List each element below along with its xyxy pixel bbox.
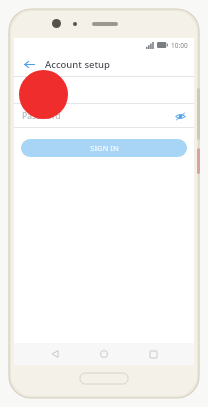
button[interactable]: Show password bbox=[173, 109, 187, 123]
button[interactable]: Recent apps bbox=[145, 346, 161, 362]
button[interactable]: SIGN IN bbox=[21, 139, 187, 157]
button[interactable]: E-mail bbox=[14, 77, 194, 104]
staticText: Password bbox=[22, 110, 61, 122]
staticText: SIGN IN bbox=[90, 143, 119, 153]
staticText: 10:00 bbox=[171, 41, 188, 50]
button[interactable]: Password bbox=[14, 104, 194, 128]
button[interactable]: Home bbox=[96, 346, 112, 362]
button[interactable]: Back bbox=[21, 56, 37, 72]
staticText: Account setup bbox=[45, 58, 110, 71]
button[interactable]: Back bbox=[47, 346, 63, 362]
